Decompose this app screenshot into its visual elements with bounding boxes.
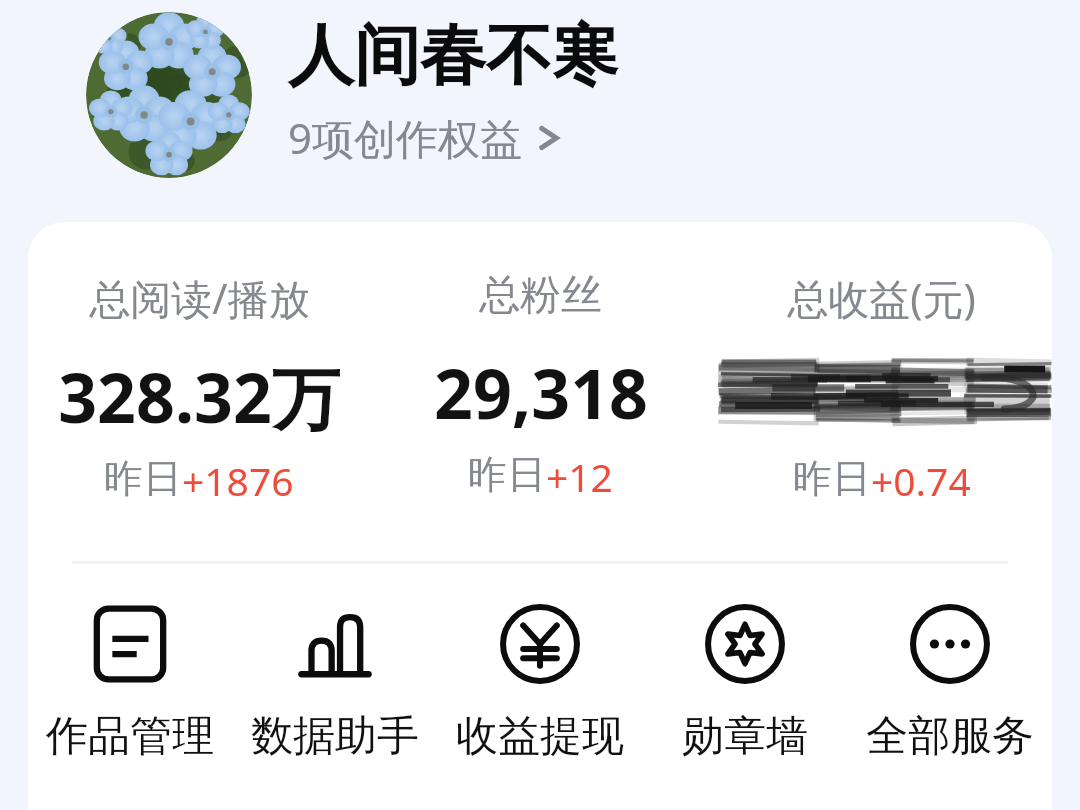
staticText: 328.32万 bbox=[58, 350, 340, 432]
button[interactable]: 数据助手 bbox=[232, 602, 437, 763]
staticText: 总阅读/播放 bbox=[89, 270, 310, 326]
staticText: 29,318 bbox=[434, 346, 648, 428]
staticText: 全部服务 bbox=[866, 710, 1034, 763]
staticText: 收益提现 bbox=[456, 710, 624, 763]
staticText: +12 bbox=[546, 450, 613, 503]
button[interactable]: 全部服务 bbox=[847, 602, 1052, 763]
button[interactable]: 勋章墙 bbox=[642, 602, 847, 763]
staticText: 作品管理 bbox=[46, 710, 214, 763]
button[interactable]: 总收益(元) bbox=[711, 270, 1052, 507]
staticText: 昨日 bbox=[104, 454, 182, 503]
staticText: 勋章墙 bbox=[682, 710, 808, 763]
staticText: 总粉丝 bbox=[479, 270, 602, 322]
staticText: +0.74 bbox=[871, 454, 971, 507]
button[interactable]: 总粉丝 bbox=[370, 270, 711, 503]
staticText: 昨日 bbox=[793, 454, 871, 503]
staticText: 昨日 bbox=[468, 450, 546, 499]
button[interactable]: 总阅读/播放 bbox=[28, 270, 370, 507]
button[interactable]: 9项创作权益 bbox=[288, 109, 563, 166]
staticText: 数据助手 bbox=[251, 710, 419, 763]
staticText: 人间春不寒 bbox=[288, 14, 618, 97]
button[interactable]: Profile avatar bbox=[86, 12, 252, 178]
button[interactable]: 收益提现 bbox=[437, 602, 642, 763]
button[interactable]: 作品管理 bbox=[28, 602, 232, 763]
staticText: 9项创作权益 bbox=[288, 109, 523, 166]
staticText: +1876 bbox=[182, 454, 294, 507]
staticText: 总收益(元) bbox=[787, 270, 976, 326]
